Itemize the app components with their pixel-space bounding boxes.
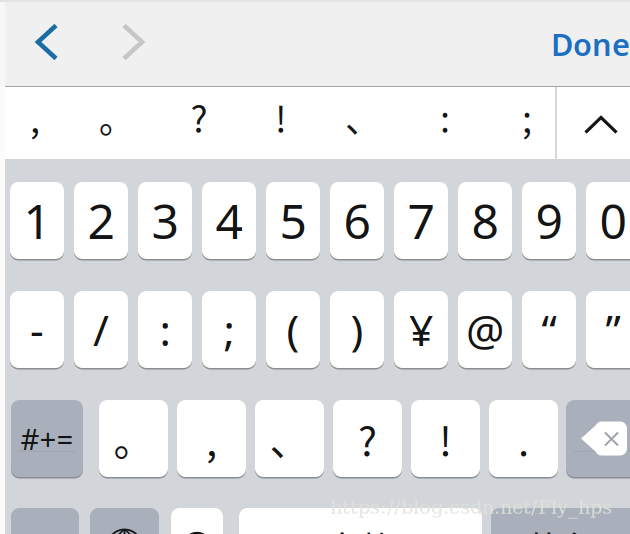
- button[interactable]: [171, 508, 223, 534]
- button[interactable]: ;: [202, 291, 256, 368]
- staticText: 0: [599, 189, 626, 252]
- button[interactable]: 、: [324, 81, 402, 153]
- staticText: https://blog.csdn.net/Fly_hps: [330, 496, 612, 518]
- button[interactable]: !: [242, 81, 320, 153]
- button[interactable]: [11, 508, 79, 534]
- button[interactable]: ,: [177, 400, 246, 477]
- button[interactable]: 6: [330, 182, 384, 259]
- staticText: (: [286, 301, 299, 358]
- staticText: 8: [471, 189, 498, 252]
- button[interactable]: 2: [74, 182, 128, 259]
- button[interactable]: Hide keyboard: [565, 89, 630, 161]
- button[interactable]: 9: [522, 182, 576, 259]
- staticText: 空格: [325, 521, 395, 534]
- button[interactable]: @: [458, 291, 512, 368]
- button[interactable]: ?: [160, 81, 238, 153]
- staticText: ”: [605, 301, 620, 358]
- button[interactable]: ¥: [394, 291, 448, 368]
- staticText: ?: [358, 409, 377, 467]
- staticText: -: [30, 301, 44, 358]
- staticText: 5: [279, 189, 306, 252]
- staticText: 。: [99, 91, 135, 143]
- button[interactable]: /: [74, 291, 128, 368]
- staticText: :: [440, 91, 450, 143]
- button[interactable]: (: [266, 291, 320, 368]
- staticText: 7: [407, 189, 434, 252]
- button[interactable]: 空格: [239, 508, 482, 534]
- button[interactable]: 换行: [491, 508, 630, 534]
- staticText: ;: [223, 301, 234, 358]
- button[interactable]: 8: [458, 182, 512, 259]
- staticText: :: [159, 301, 170, 358]
- button[interactable]: 。: [99, 400, 168, 477]
- button[interactable]: Previous: [18, 11, 76, 73]
- staticText: 3: [151, 189, 178, 252]
- staticText: 6: [343, 189, 370, 252]
- staticText: ,: [30, 91, 40, 143]
- button[interactable]: #+=: [11, 400, 83, 477]
- staticText: 、: [345, 91, 381, 143]
- staticText: @: [466, 301, 504, 358]
- button[interactable]: 7: [394, 182, 448, 259]
- staticText: !: [275, 91, 287, 143]
- button[interactable]: 、: [255, 400, 324, 477]
- button[interactable]: .: [489, 400, 558, 477]
- button[interactable]: !: [411, 400, 480, 477]
- staticText: 换行: [529, 521, 599, 534]
- button[interactable]: 0: [586, 182, 630, 259]
- button[interactable]: 4: [202, 182, 256, 259]
- staticText: 1: [23, 189, 50, 252]
- button[interactable]: ”: [586, 291, 630, 368]
- staticText: ,: [206, 409, 217, 467]
- button[interactable]: 3: [138, 182, 192, 259]
- button[interactable]: :: [406, 81, 484, 153]
- staticText: ¥: [409, 301, 433, 358]
- button[interactable]: 5: [266, 182, 320, 259]
- button[interactable]: Next: [104, 11, 162, 73]
- staticText: ;: [522, 91, 532, 143]
- button[interactable]: ?: [333, 400, 402, 477]
- staticText: 、: [269, 409, 309, 467]
- button[interactable]: Done: [551, 17, 630, 71]
- button[interactable]: ;: [488, 81, 566, 153]
- button[interactable]: [90, 508, 159, 534]
- staticText: 。: [113, 409, 153, 467]
- button[interactable]: 。: [78, 81, 156, 153]
- button[interactable]: ): [330, 291, 384, 368]
- staticText: ): [350, 301, 363, 358]
- staticText: “: [541, 301, 556, 358]
- staticText: ?: [190, 91, 207, 143]
- staticText: 4: [215, 189, 242, 252]
- button[interactable]: -: [10, 291, 64, 368]
- staticText: 2: [87, 189, 114, 252]
- button[interactable]: “: [522, 291, 576, 368]
- staticText: #+=: [20, 419, 73, 458]
- staticText: !: [439, 409, 452, 467]
- staticText: .: [518, 409, 529, 467]
- button[interactable]: [566, 400, 630, 477]
- button[interactable]: 1: [10, 182, 64, 259]
- button[interactable]: ,: [0, 81, 74, 153]
- staticText: Done: [551, 24, 630, 64]
- staticText: 9: [535, 189, 562, 252]
- button[interactable]: :: [138, 291, 192, 368]
- staticText: /: [93, 301, 109, 358]
